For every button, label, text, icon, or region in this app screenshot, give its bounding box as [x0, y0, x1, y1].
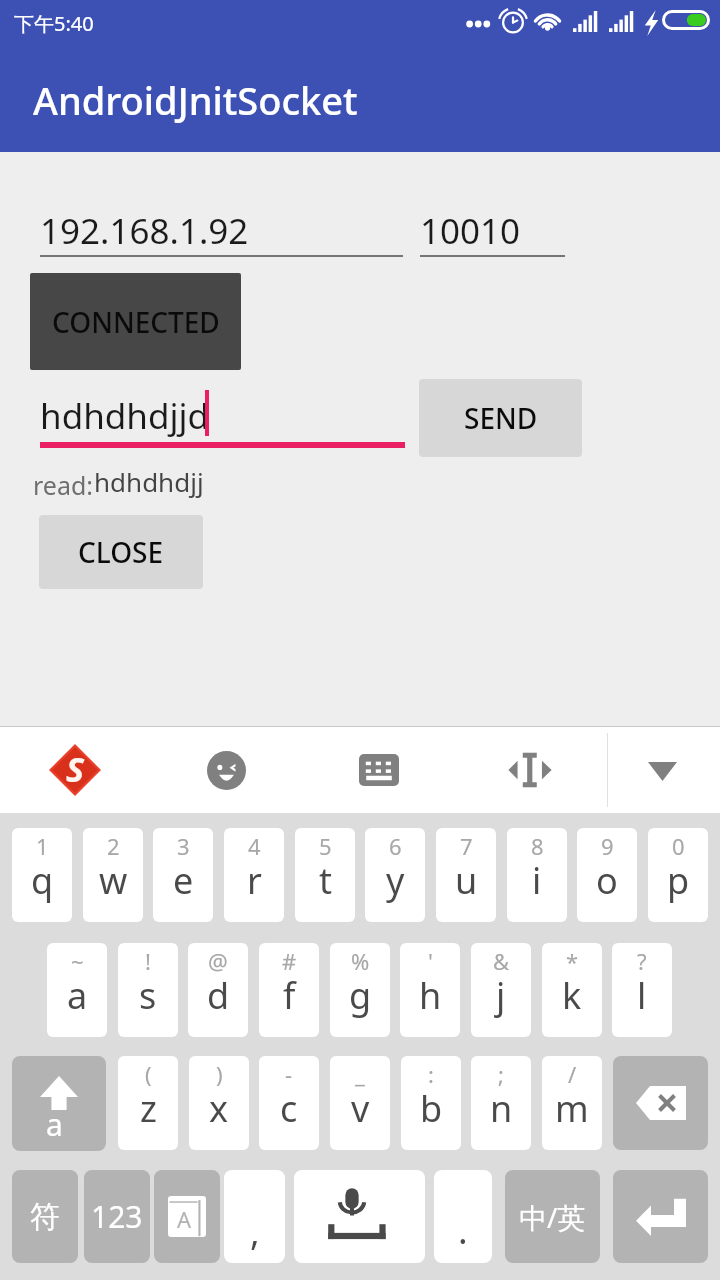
- staticText: SEND: [464, 399, 538, 437]
- staticText: a: [46, 1104, 63, 1145]
- staticText: :: [428, 1059, 434, 1089]
- staticText: /: [568, 1059, 577, 1089]
- button[interactable]: (: [118, 1056, 178, 1150]
- button[interactable]: 0: [648, 828, 708, 922]
- staticText: A: [177, 1204, 192, 1234]
- button[interactable]: -: [259, 1056, 319, 1150]
- staticText: t: [319, 856, 332, 905]
- button[interactable]: @: [188, 943, 248, 1037]
- staticText: ,: [250, 1207, 260, 1256]
- button[interactable]: 123: [84, 1170, 150, 1263]
- staticText: f: [283, 971, 296, 1020]
- staticText: S: [66, 746, 85, 792]
- button[interactable]: 2: [83, 828, 143, 922]
- button[interactable]: ': [400, 943, 460, 1037]
- staticText: CONNECTED: [52, 303, 220, 341]
- staticText: 1: [36, 831, 49, 861]
- staticText: a: [67, 971, 88, 1020]
- staticText: &: [493, 946, 510, 976]
- staticText: 2: [107, 831, 120, 861]
- button[interactable]: 3: [153, 828, 213, 922]
- button[interactable]: Port field: [419, 196, 565, 258]
- button[interactable]: &: [471, 943, 531, 1037]
- button[interactable]: 1: [12, 828, 72, 922]
- button[interactable]: 6: [365, 828, 425, 922]
- button[interactable]: ;: [471, 1056, 531, 1150]
- button[interactable]: *: [542, 943, 602, 1037]
- staticText: k: [562, 971, 582, 1020]
- button[interactable]: !: [118, 943, 178, 1037]
- staticText: 6: [389, 831, 402, 861]
- button[interactable]: 9: [577, 828, 637, 922]
- staticText: v: [351, 1084, 370, 1133]
- button[interactable]: #: [259, 943, 319, 1037]
- staticText: %: [351, 946, 370, 976]
- button[interactable]: 符: [12, 1170, 78, 1263]
- button[interactable]: Hide keyboard: [648, 762, 677, 781]
- staticText: u: [455, 856, 478, 905]
- staticText: x: [209, 1084, 229, 1133]
- button[interactable]: 7: [436, 828, 496, 922]
- button[interactable]: :: [401, 1056, 461, 1150]
- button[interactable]: 5: [295, 828, 355, 922]
- button[interactable]: 4: [224, 828, 284, 922]
- staticText: ;: [498, 1059, 504, 1089]
- button[interactable]: SEND: [419, 379, 582, 457]
- staticText: j: [496, 971, 506, 1020]
- staticText: c: [280, 1084, 298, 1133]
- button[interactable]: ?: [612, 943, 672, 1037]
- staticText: 4: [248, 831, 261, 861]
- staticText: 3: [177, 831, 190, 861]
- staticText: p: [667, 856, 690, 905]
- staticText: #: [282, 946, 297, 976]
- staticText: @: [208, 946, 228, 976]
- button[interactable]: _: [330, 1056, 390, 1150]
- button[interactable]: CONNECTED: [30, 273, 241, 370]
- staticText: read:: [33, 468, 94, 502]
- staticText: 中/英: [519, 1198, 586, 1236]
- button[interactable]: ~: [47, 943, 107, 1037]
- button[interactable]: Move cursor: [507, 752, 553, 788]
- staticText: h: [419, 971, 442, 1020]
- staticText: ~: [71, 946, 84, 976]
- staticText: ): [216, 1059, 223, 1089]
- staticText: i: [532, 856, 542, 905]
- button[interactable]: Emoji: [207, 751, 246, 790]
- staticText: ?: [637, 946, 647, 976]
- button[interactable]: Enter: [613, 1170, 708, 1263]
- staticText: .: [458, 1206, 468, 1255]
- staticText: 5: [319, 831, 332, 861]
- button[interactable]: Backspace: [613, 1056, 708, 1150]
- button[interactable]: Keyboard layout: [359, 754, 399, 786]
- button[interactable]: ,: [224, 1170, 285, 1263]
- button[interactable]: 8: [507, 828, 567, 922]
- button[interactable]: Space: [294, 1170, 425, 1263]
- staticText: o: [596, 856, 618, 905]
- staticText: 下午5:40: [14, 10, 94, 37]
- button[interactable]: 中/英: [505, 1170, 600, 1263]
- staticText: 7: [460, 831, 473, 861]
- staticText: 符: [30, 1198, 60, 1236]
- button[interactable]: %: [330, 943, 390, 1037]
- button[interactable]: ): [189, 1056, 249, 1150]
- staticText: 192.168.1.92: [40, 207, 249, 255]
- staticText: CLOSE: [78, 533, 164, 571]
- button[interactable]: Shift: [12, 1056, 106, 1151]
- staticText: hdhdhdjj: [94, 464, 204, 499]
- button[interactable]: Sogou input method: [49, 744, 101, 796]
- button[interactable]: Switch language: [154, 1170, 220, 1263]
- staticText: 123: [91, 1196, 143, 1237]
- staticText: e: [173, 856, 194, 905]
- button[interactable]: /: [542, 1056, 602, 1150]
- button[interactable]: CLOSE: [39, 515, 203, 589]
- button[interactable]: Message field: [40, 384, 405, 448]
- staticText: _: [355, 1059, 365, 1089]
- staticText: AndroidJnitSocket: [33, 74, 358, 126]
- button[interactable]: .: [434, 1170, 492, 1263]
- staticText: n: [490, 1084, 513, 1133]
- staticText: l: [637, 971, 647, 1020]
- button[interactable]: Server IP address field: [39, 196, 403, 258]
- staticText: 0: [672, 831, 685, 861]
- staticText: -: [285, 1059, 293, 1089]
- staticText: s: [139, 971, 157, 1020]
